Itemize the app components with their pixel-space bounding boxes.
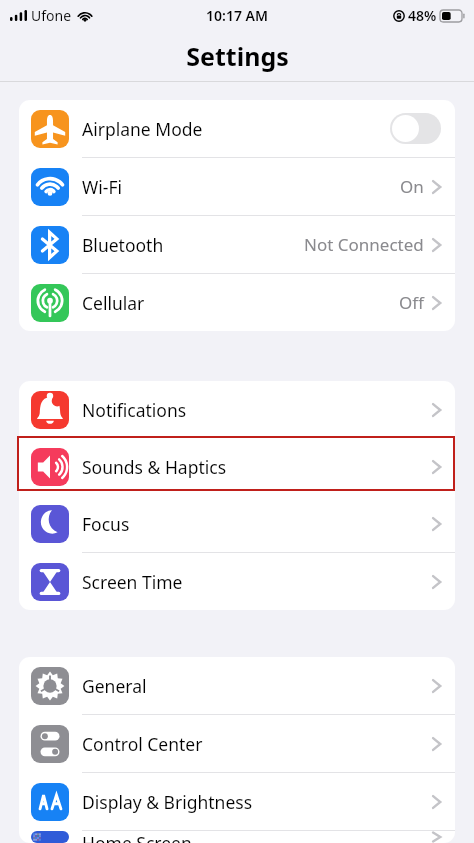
staticText: Screen Time — [82, 570, 432, 594]
staticText: Not Connected — [304, 233, 424, 256]
button[interactable]: Home Screen — [19, 831, 455, 843]
staticText: Off — [399, 291, 424, 314]
button[interactable]: Focus — [19, 495, 455, 552]
staticText: On — [400, 175, 424, 198]
staticText: Cellular — [82, 291, 399, 315]
button[interactable]: Airplane Mode toggle — [390, 113, 441, 144]
button[interactable]: Display & Brightness — [19, 773, 455, 830]
button[interactable]: Control Center — [19, 715, 455, 772]
button[interactable]: Sounds & Haptics — [19, 438, 455, 495]
button[interactable]: Cellular — [19, 274, 455, 331]
staticText: 10:17 AM — [206, 6, 268, 25]
staticText: Control Center — [82, 732, 432, 756]
staticText: Sounds & Haptics — [82, 455, 432, 479]
button[interactable]: Bluetooth — [19, 216, 455, 273]
staticText: Airplane Mode — [82, 117, 390, 141]
staticText: Wi-Fi — [82, 175, 400, 199]
button[interactable]: Wi-Fi — [19, 158, 455, 215]
staticText: Home Screen — [82, 831, 432, 843]
button[interactable]: Notifications — [19, 381, 455, 438]
button[interactable]: Screen Time — [19, 553, 455, 610]
staticText: Settings — [186, 39, 289, 73]
staticText: Ufone — [31, 6, 72, 25]
staticText: Bluetooth — [82, 233, 304, 257]
staticText: General — [82, 674, 432, 698]
staticText: Display & Brightness — [82, 790, 432, 814]
staticText: 48% — [408, 6, 437, 25]
staticText: Focus — [82, 512, 432, 536]
button[interactable]: Airplane Mode — [19, 100, 455, 157]
staticText: Notifications — [82, 398, 432, 422]
button[interactable]: General — [19, 657, 455, 714]
